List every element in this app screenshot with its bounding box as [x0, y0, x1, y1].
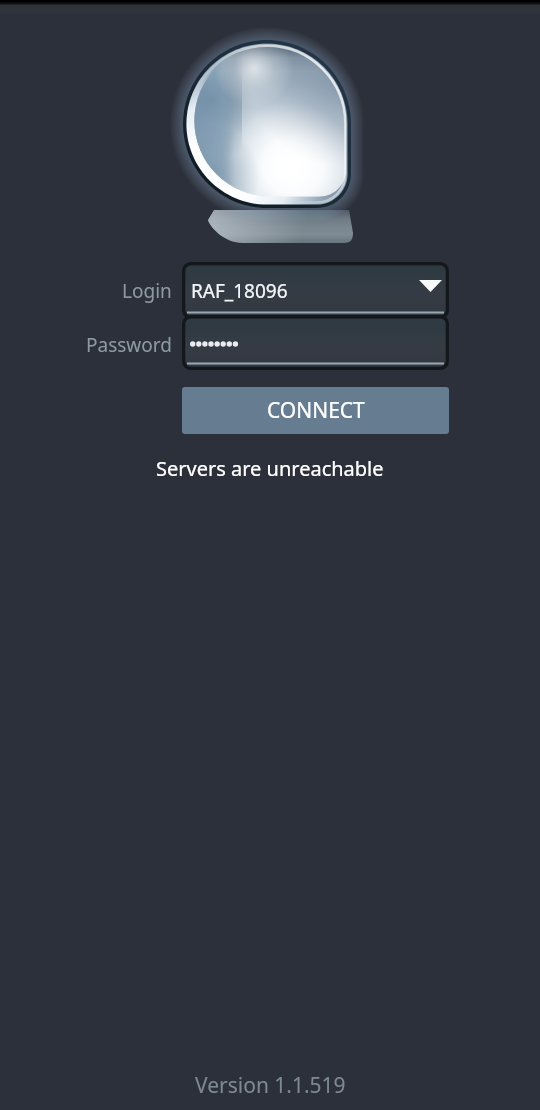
- staticText: Version 1.1.519: [195, 1071, 346, 1100]
- staticText: Login: [122, 278, 172, 304]
- staticText: Servers are unreachable: [156, 455, 384, 482]
- button[interactable]: RAF_18096: [182, 262, 449, 319]
- staticText: Password: [86, 332, 172, 358]
- staticText: CONNECT: [267, 396, 365, 425]
- button[interactable]: Open login list: [414, 272, 446, 300]
- button[interactable]: CONNECT: [182, 387, 449, 434]
- button[interactable]: [182, 315, 449, 370]
- staticText: RAF_18096: [191, 278, 288, 304]
